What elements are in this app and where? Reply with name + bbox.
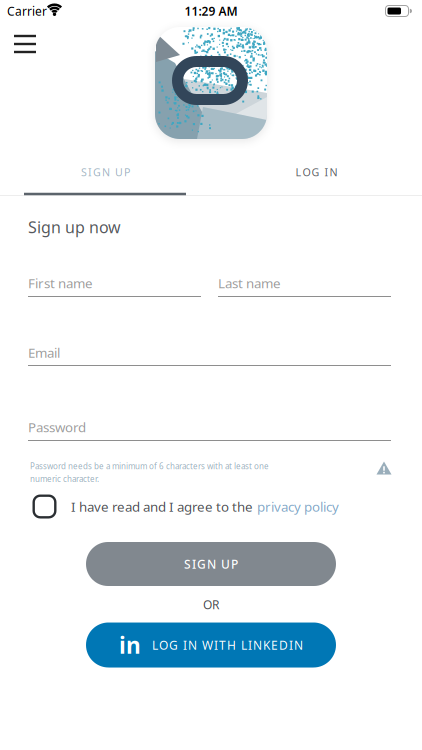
staticText: Password needs be a minimum of 6 charact… [30, 461, 269, 471]
staticText: L O G I N [295, 165, 337, 179]
staticText: 11:29 AM [184, 3, 237, 19]
staticText: S I G N U P [81, 165, 130, 179]
button[interactable]: in [86, 622, 336, 667]
staticText: First name [28, 274, 93, 292]
staticText: Carrier [7, 3, 47, 19]
button[interactable]: S I G N U P [86, 542, 336, 586]
staticText: Sign up now [28, 216, 121, 238]
staticText: numeric character. [30, 473, 99, 484]
staticText: privacy policy [257, 498, 339, 515]
staticText: in [119, 630, 141, 660]
button[interactable]: S I G N U P [0, 150, 211, 194]
staticText: Last name [218, 274, 281, 292]
button[interactable]: L O G I N [211, 150, 422, 194]
staticText: L O G I N W I T H L I N K E D I N [152, 637, 303, 653]
button[interactable]: I have read and I agree to the privacy p… [32, 494, 56, 518]
staticText: Password [28, 418, 86, 436]
staticText: I have read and I agree to the [71, 498, 253, 515]
button[interactable]: privacy policy [257, 498, 339, 515]
staticText: OR [203, 596, 219, 612]
staticText: S I G N U P [184, 556, 238, 572]
button[interactable]: Menu [0, 0, 50, 60]
staticText: Email [28, 344, 60, 361]
